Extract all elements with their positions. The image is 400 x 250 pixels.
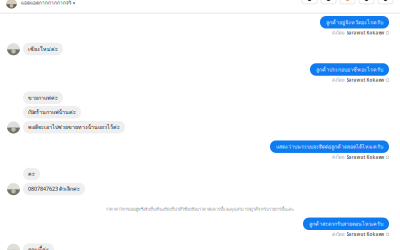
button[interactable]: 0807847623 ตัวเล็กค่ะ	[23, 183, 85, 195]
button[interactable]: เชียงใหม่ค่ะ	[23, 43, 63, 55]
button[interactable]: แสดงว่าบนระบบจะติดต่อลูกค้าตลอดได้ไหมครั…	[270, 140, 389, 153]
staticText: ตอนนี้ค่ะ	[28, 245, 49, 250]
staticText: ลูกค้าอยู่จังหวัดอะไรครับ	[326, 18, 383, 26]
button[interactable]: คะ	[23, 168, 40, 180]
button[interactable]: ลูกค้าประกอบอาชีพอะไรครับ	[310, 63, 389, 76]
staticText: ขายกาแฟค่ะ	[28, 93, 58, 102]
staticText: คะ	[28, 170, 35, 178]
button[interactable]: ลูกค้าอยู่จังหวัดอะไรครับ	[320, 16, 389, 28]
staticText: Sarawut Kokaew	[346, 154, 384, 160]
staticText: ราคาค่าโทรของอยู่หรือจำเป็นที่จะเปิดเป็น…	[106, 206, 294, 213]
button[interactable]: ขายกาแฟค่ะ	[23, 91, 63, 104]
staticText: ลูกค้าประกอบอาชีพอะไรครับ	[316, 65, 383, 74]
staticText: เปิดร้านกาแฟบ้านค่ะ	[28, 108, 76, 116]
staticText: Sarawut Kokaew	[346, 231, 384, 237]
staticText: ▾	[73, 1, 75, 5]
staticText: ส่งโดย	[332, 231, 345, 238]
staticText: ส่งโดย	[332, 77, 345, 83]
button[interactable]: More options	[378, 0, 393, 6]
button[interactable]: Highlight	[340, 0, 355, 6]
button[interactable]: Attachment	[359, 0, 374, 6]
button[interactable]: ลูกค้าสะดวกรับสายตอนไหนครับ	[303, 218, 389, 230]
button[interactable]: เปิดร้านกาแฟบ้านค่ะ	[23, 106, 81, 118]
button[interactable]: Note	[321, 0, 336, 6]
staticText: แอดแอดกากกากกากจริ	[21, 0, 71, 7]
button[interactable]: ตอนนี้ค่ะ	[23, 243, 54, 250]
staticText: 0807847623 ตัวเล็กค่ะ	[28, 185, 80, 193]
staticText: Sarawut Kokaew	[346, 30, 384, 36]
staticText: Sarawut Kokaew	[346, 77, 384, 83]
staticText: ส่งโดย	[332, 154, 345, 161]
staticText: ส่งโดย	[332, 29, 345, 36]
staticText: แสดงว่าบนระบบจะติดต่อลูกค้าตลอดได้ไหมครั…	[276, 142, 383, 151]
staticText: ลูกค้าสะดวกรับสายตอนไหนครับ	[309, 220, 383, 228]
button[interactable]: Profile photo	[302, 0, 317, 6]
staticText: เชียงใหม่ค่ะ	[28, 45, 58, 53]
button[interactable]: พอดีจะเอาไปช่วยขายทางบ้านแถวไว้ค่ะ	[23, 121, 125, 133]
staticText: พอดีจะเอาไปช่วยขายทางบ้านแถวไว้ค่ะ	[28, 123, 120, 131]
